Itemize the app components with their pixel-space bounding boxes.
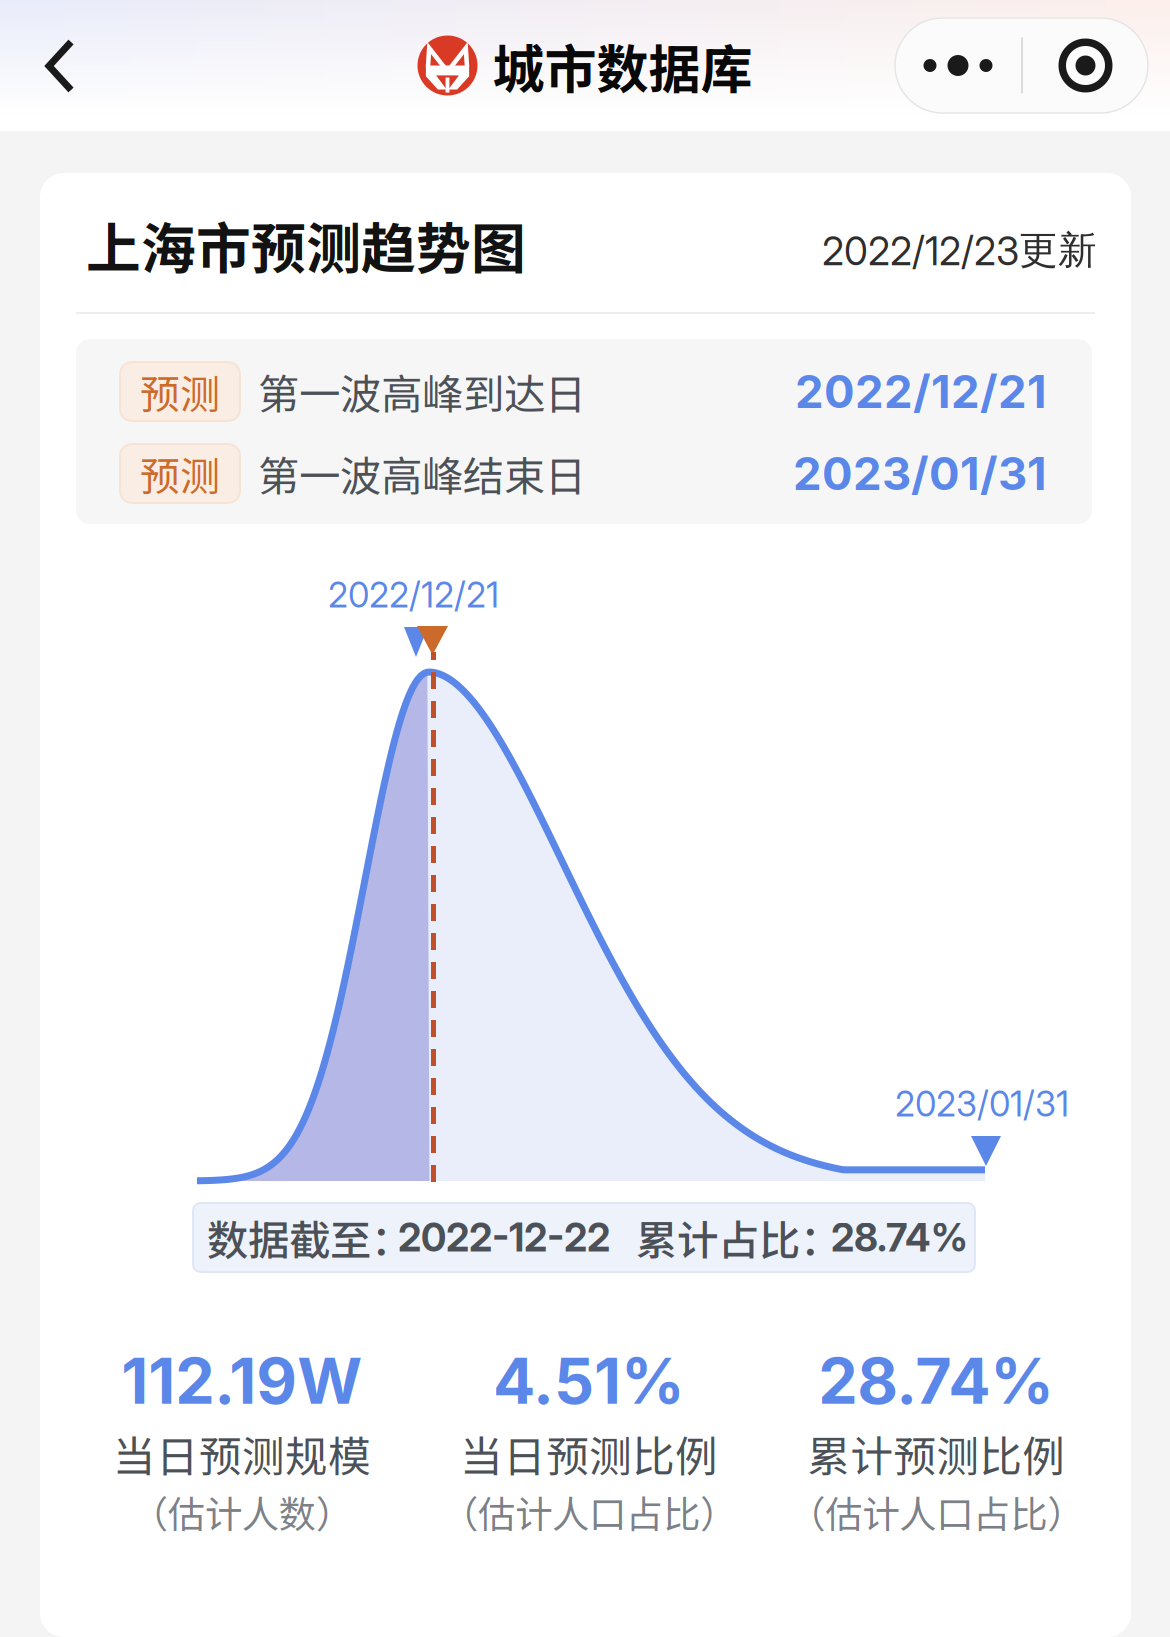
staticText: 上海市预测趋势图 bbox=[86, 205, 526, 284]
staticText: 当日预测规模 bbox=[113, 1423, 371, 1485]
staticText: 28.74% bbox=[831, 1214, 968, 1261]
staticText: 累计占比： bbox=[636, 1208, 841, 1267]
staticText: 2022/12/21 bbox=[328, 574, 499, 616]
staticText: 当日预测比例 bbox=[460, 1423, 718, 1485]
button[interactable]: 更多 bbox=[895, 18, 1021, 113]
staticText: 112.19W bbox=[121, 1343, 362, 1419]
staticText: 2023/01/31 bbox=[895, 1083, 1069, 1125]
staticText: （估计人数） bbox=[131, 1485, 353, 1539]
staticText: 2022/12/21 bbox=[795, 364, 1047, 419]
staticText: （估计人口占比） bbox=[441, 1485, 737, 1539]
staticText: 4.51% bbox=[493, 1343, 685, 1419]
staticText: 28.74% bbox=[818, 1343, 1054, 1419]
staticText: 2022-12-22 bbox=[398, 1214, 610, 1261]
staticText: 数据截至： bbox=[207, 1208, 412, 1267]
button[interactable]: 返回 bbox=[40, 36, 84, 96]
button[interactable]: 关闭 bbox=[1023, 18, 1148, 113]
staticText: 预测 bbox=[140, 362, 220, 420]
staticText: 第一波高峰到达日 bbox=[258, 362, 586, 421]
staticText: 2023/01/31 bbox=[793, 446, 1047, 501]
staticText: 城市数据库 bbox=[492, 28, 752, 103]
staticText: 累计预测比例 bbox=[807, 1423, 1065, 1485]
staticText: 2022/12/23更新 bbox=[822, 226, 1097, 275]
staticText: 第一波高峰结束日 bbox=[258, 444, 586, 503]
staticText: （估计人口占比） bbox=[788, 1485, 1084, 1539]
staticText: 预测 bbox=[140, 444, 220, 502]
